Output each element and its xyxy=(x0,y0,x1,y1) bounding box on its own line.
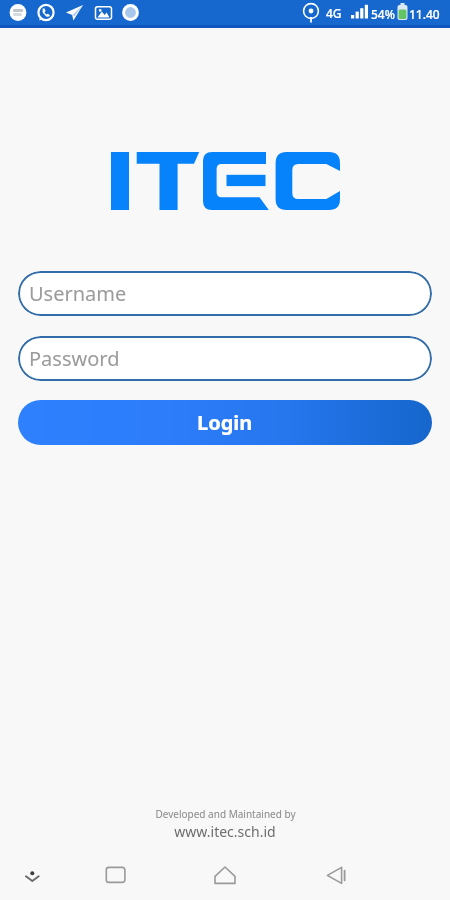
button[interactable]: Back xyxy=(312,850,360,900)
button[interactable]: Hide keyboard xyxy=(8,850,56,900)
staticText: www.itec.sch.id xyxy=(174,822,276,841)
staticText: Username xyxy=(29,280,127,307)
staticText: Login xyxy=(197,409,253,436)
button[interactable]: Username xyxy=(18,271,432,316)
staticText: 4G xyxy=(326,5,342,21)
button[interactable]: Home xyxy=(201,850,249,900)
button[interactable]: Login xyxy=(18,400,432,445)
staticText: Password xyxy=(29,345,120,372)
staticText: 54% xyxy=(371,6,395,22)
button[interactable]: Password xyxy=(18,336,432,381)
staticText: Developed and Maintained by xyxy=(155,807,296,821)
button[interactable]: Recents xyxy=(91,850,139,900)
staticText: 11.40 xyxy=(409,6,440,22)
